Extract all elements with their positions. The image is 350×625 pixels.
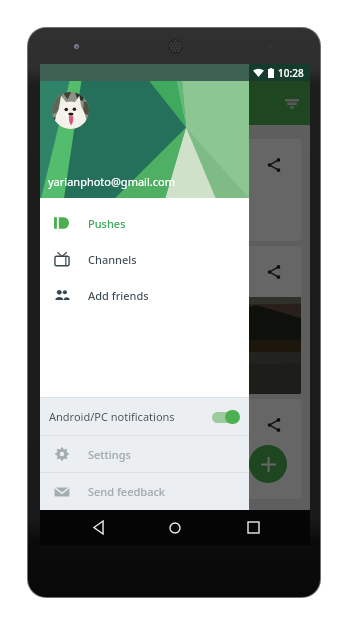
staticText: Pushbullet [61,411,118,426]
staticText: Pushbullet [61,151,118,166]
button[interactable]: Send feedback [40,473,249,510]
button[interactable]: Channels [40,241,249,277]
staticText: Send feedback [88,484,165,499]
staticText: Settings [88,447,131,462]
button[interactable]: Home [155,510,195,545]
staticText: yarianphoto@gmail.com [48,174,175,189]
staticText: Channels [88,252,137,267]
button[interactable]: Android/PC notifications [40,398,249,435]
button[interactable]: Back [78,510,118,545]
staticText: Android/PC notifications [49,409,175,424]
button[interactable]: Add [249,445,287,483]
button[interactable]: Settings [40,436,249,472]
button[interactable]: Pushes [40,205,249,241]
button[interactable]: Profile photo [52,92,89,129]
staticText: Pushes [88,216,126,231]
staticText: Add friends [88,288,149,303]
button[interactable]: Recents [233,510,273,545]
button[interactable]: Add friends [40,277,249,313]
button[interactable]: Pushbullet [49,246,301,394]
button[interactable]: Filter [280,92,304,116]
staticText: http://bit.ly/push-5-0/ [61,450,173,465]
staticText: Pushbullet [61,258,118,273]
button[interactable]: Pushbullet [49,139,301,241]
staticText: http://bit.ly/push-5-0/ [61,190,173,205]
button[interactable]: Pushbullet [49,399,301,499]
staticText: 10:28 [278,66,304,80]
